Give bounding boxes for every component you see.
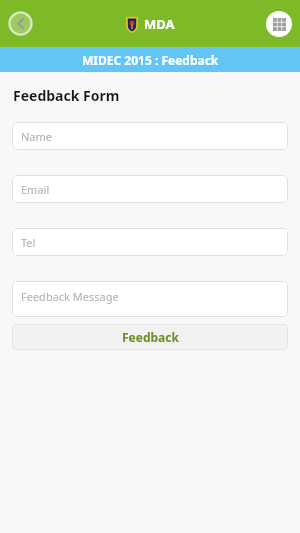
button[interactable]: Name xyxy=(12,122,288,150)
staticText: Name xyxy=(21,129,53,144)
staticText: Email xyxy=(21,182,50,197)
staticText: Feedback Form xyxy=(13,86,120,105)
button[interactable]: Feedback Message xyxy=(12,281,288,317)
staticText: Feedback xyxy=(122,329,179,345)
button[interactable]: Tel xyxy=(12,228,288,256)
staticText: Tel xyxy=(21,235,36,250)
button[interactable]: Back xyxy=(8,11,33,36)
staticText: Feedback Message xyxy=(21,289,119,304)
button[interactable]: Feedback xyxy=(12,324,288,350)
button[interactable]: Menu xyxy=(266,11,292,37)
staticText: MDA xyxy=(144,15,175,33)
button[interactable]: Email xyxy=(12,175,288,203)
staticText: MIDEC 2015 : Feedback xyxy=(82,52,219,68)
